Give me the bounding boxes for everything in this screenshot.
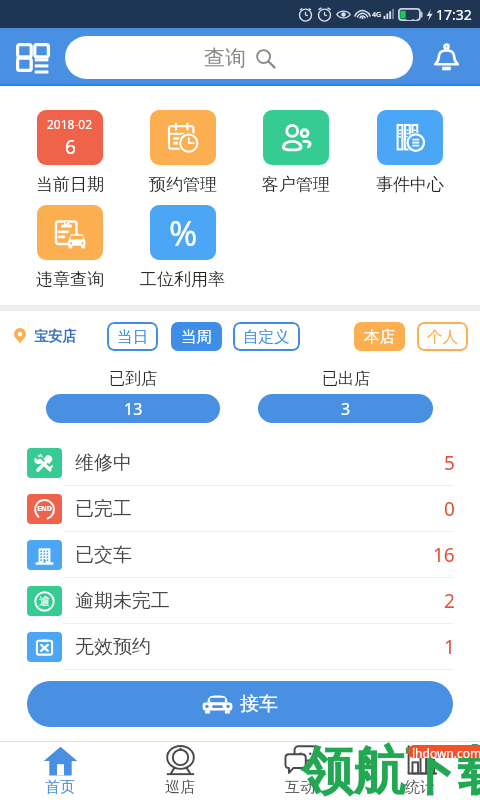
- staticText: 逾期未完工: [75, 589, 170, 613]
- staticText: 统计: [405, 778, 435, 797]
- staticText: 16: [433, 542, 455, 568]
- button[interactable]: 巡店: [120, 742, 240, 800]
- staticText: 查询: [204, 45, 246, 71]
- staticText: 互动: [285, 778, 315, 797]
- staticText: 3: [341, 398, 351, 420]
- button[interactable]: 逾: [0, 578, 480, 624]
- staticText: 逾: [39, 594, 50, 608]
- button[interactable]: 3: [258, 394, 433, 423]
- staticText: 已到店: [109, 369, 157, 389]
- button[interactable]: 事件中心: [376, 110, 444, 195]
- button[interactable]: 个人: [417, 322, 468, 351]
- staticText: 自定义: [243, 327, 290, 347]
- button[interactable]: 已交车: [0, 532, 480, 578]
- staticText: 已完工: [75, 497, 132, 521]
- staticText: 4G: [372, 10, 382, 20]
- staticText: 违章查询: [36, 269, 104, 290]
- staticText: 20: [406, 8, 419, 21]
- button[interactable]: 违章查询: [36, 205, 104, 290]
- staticText: 本店: [364, 327, 395, 347]
- button[interactable]: 预约管理: [149, 110, 217, 195]
- button[interactable]: END: [0, 486, 480, 532]
- staticText: 2018-02: [47, 116, 93, 132]
- staticText: 当周: [181, 327, 212, 347]
- staticText: 个人: [427, 327, 458, 347]
- button[interactable]: 互动: [240, 742, 360, 800]
- button[interactable]: 查询: [65, 36, 413, 79]
- staticText: 巡店: [165, 778, 195, 797]
- staticText: 客户管理: [262, 174, 330, 195]
- staticText: END: [37, 504, 52, 514]
- button[interactable]: 维修中: [0, 440, 480, 486]
- staticText: 工位利用率: [140, 269, 225, 290]
- staticText: lhdown.com: [412, 745, 480, 758]
- button[interactable]: 无效预约: [0, 624, 480, 670]
- staticText: 13: [124, 398, 143, 420]
- button[interactable]: 自定义: [233, 322, 300, 351]
- button[interactable]: 首页: [0, 742, 120, 800]
- staticText: %: [169, 210, 198, 256]
- staticText: 领航下载: [301, 739, 480, 800]
- button[interactable]: 当日: [107, 322, 158, 351]
- staticText: 1: [444, 634, 455, 660]
- staticText: 预约管理: [149, 174, 217, 195]
- staticText: 已出店: [322, 369, 370, 389]
- staticText: 17:32: [436, 5, 472, 24]
- staticText: 已交车: [75, 543, 132, 567]
- staticText: 5: [444, 450, 455, 476]
- staticText: 维修中: [75, 451, 132, 475]
- staticText: 0: [444, 496, 455, 522]
- staticText: 宝安店: [34, 328, 76, 346]
- staticText: 当日: [117, 327, 148, 347]
- button[interactable]: %: [140, 205, 225, 290]
- button[interactable]: 13: [46, 394, 220, 423]
- button[interactable]: 统计: [360, 742, 480, 800]
- button[interactable]: Notifications: [413, 28, 480, 86]
- staticText: 2: [444, 588, 455, 614]
- button[interactable]: 客户管理: [262, 110, 330, 195]
- staticText: 无效预约: [75, 635, 151, 659]
- staticText: 事件中心: [376, 174, 444, 195]
- button[interactable]: 接车: [27, 681, 453, 727]
- staticText: 首页: [45, 778, 75, 797]
- button[interactable]: Menu: [0, 28, 65, 86]
- button[interactable]: 本店: [354, 322, 405, 351]
- staticText: 6: [65, 134, 76, 160]
- staticText: 接车: [240, 692, 278, 716]
- button[interactable]: 2018-02: [36, 110, 104, 195]
- button[interactable]: 当周: [171, 322, 222, 351]
- staticText: 当前日期: [36, 174, 104, 195]
